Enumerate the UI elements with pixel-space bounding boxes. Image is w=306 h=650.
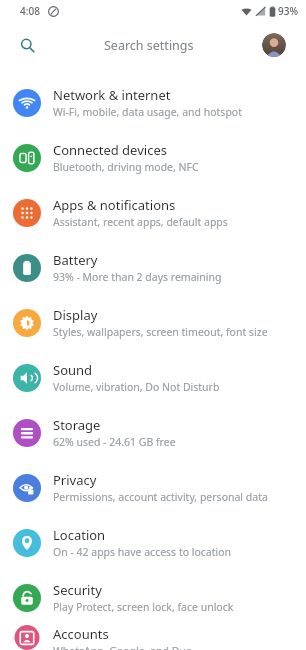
staticText: Accounts [53, 625, 109, 643]
staticText: 93% - More than 2 days remaining [53, 270, 222, 284]
button[interactable]: Accounts [0, 625, 306, 650]
button[interactable]: Search [8, 26, 298, 64]
staticText: Permissions, account activity, personal … [53, 490, 268, 504]
staticText: Volume, vibration, Do Not Disturb [53, 380, 220, 394]
button[interactable]: Sound [0, 350, 306, 405]
staticText: Connected devices [53, 141, 167, 159]
button[interactable]: Network & internet [0, 75, 306, 130]
staticText: Apps & notifications [53, 196, 176, 214]
staticText: Storage [53, 416, 101, 434]
staticText: Play Protect, screen lock, face unlock [53, 600, 234, 614]
staticText: 62% used - 24.61 GB free [53, 435, 176, 449]
staticText: Security [53, 581, 102, 599]
staticText: On - 42 apps have access to location [53, 545, 232, 559]
staticText: Styles, wallpapers, screen timeout, font… [53, 325, 268, 339]
staticText: Bluetooth, driving mode, NFC [53, 160, 199, 174]
button[interactable]: Battery [0, 240, 306, 295]
button[interactable]: Security [0, 570, 306, 625]
staticText: WhatsApp, Google, and Duo [53, 644, 193, 650]
staticText: Search settings [104, 37, 194, 54]
staticText: 4:08 [20, 4, 40, 18]
button[interactable]: Connected devices [0, 130, 306, 185]
button[interactable]: Storage [0, 405, 306, 460]
staticText: Wi-Fi, mobile, data usage, and hotspot [53, 105, 242, 119]
button[interactable]: Location [0, 515, 306, 570]
other: Search [20, 38, 35, 53]
staticText: Network & internet [53, 86, 171, 104]
staticText: Location [53, 526, 106, 544]
button[interactable]: Apps & notifications [0, 185, 306, 240]
button[interactable]: Display [0, 295, 306, 350]
staticText: Privacy [53, 471, 97, 489]
staticText: Sound [53, 361, 93, 379]
staticText: 93% [278, 4, 298, 18]
staticText: Assistant, recent apps, default apps [53, 215, 228, 229]
button[interactable]: Privacy [0, 460, 306, 515]
button[interactable]: Account [262, 33, 286, 57]
staticText: Battery [53, 251, 98, 269]
staticText: Display [53, 306, 98, 324]
